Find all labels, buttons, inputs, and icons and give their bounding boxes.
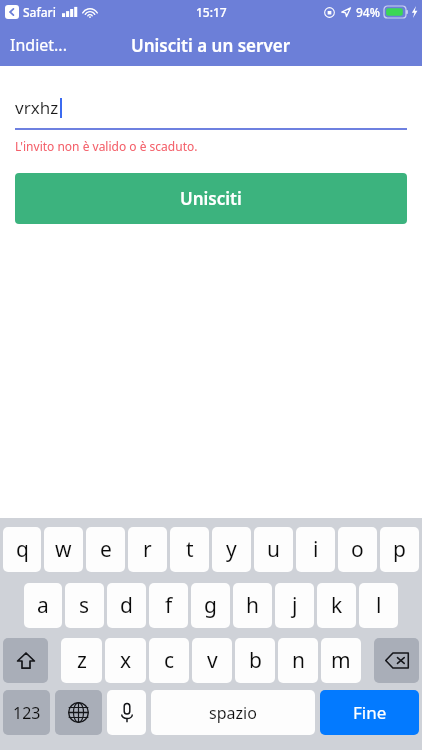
button[interactable]: f	[149, 583, 188, 628]
staticText: Unisciti	[180, 187, 242, 210]
button[interactable]: 123	[3, 690, 50, 735]
button[interactable]: Dictation	[107, 690, 146, 735]
button[interactable]: Fine	[320, 690, 419, 735]
staticText: z	[77, 646, 87, 675]
button[interactable]: h	[233, 583, 272, 628]
staticText: e	[100, 535, 112, 564]
button[interactable]: y	[212, 527, 251, 572]
staticText: vrxhz	[15, 96, 59, 119]
staticText: Unisciti a un server	[131, 34, 291, 57]
staticText: i	[313, 535, 319, 564]
button[interactable]: spazio	[151, 690, 315, 735]
staticText: w	[55, 535, 72, 564]
button[interactable]: Shift	[3, 638, 48, 683]
button[interactable]: z	[61, 638, 102, 683]
button[interactable]: vrxhz	[15, 96, 407, 130]
staticText: a	[37, 591, 49, 620]
staticText: j	[292, 591, 298, 620]
button[interactable]: i	[296, 527, 335, 572]
button[interactable]: r	[128, 527, 167, 572]
staticText: d	[120, 591, 133, 620]
button[interactable]: l	[359, 583, 398, 628]
staticText: v	[207, 646, 218, 675]
button[interactable]: k	[317, 583, 356, 628]
staticText: c	[164, 646, 175, 675]
button[interactable]: c	[149, 638, 189, 683]
staticText: y	[226, 535, 237, 564]
staticText: Fine	[353, 701, 387, 724]
button[interactable]: s	[65, 583, 104, 628]
button[interactable]: p	[380, 527, 419, 572]
button[interactable]: Indiet...	[0, 24, 77, 66]
button[interactable]: g	[191, 583, 230, 628]
button[interactable]: u	[254, 527, 293, 572]
button[interactable]: q	[3, 527, 41, 572]
staticText: m	[331, 646, 351, 675]
button[interactable]: n	[278, 638, 318, 683]
staticText: 94%	[356, 4, 380, 20]
staticText: q	[16, 535, 29, 564]
staticText: s	[79, 591, 90, 620]
button[interactable]: d	[107, 583, 146, 628]
button[interactable]: x	[105, 638, 146, 683]
staticText: r	[143, 535, 152, 564]
staticText: 123	[13, 702, 41, 724]
staticText: b	[249, 646, 262, 675]
staticText: h	[246, 591, 259, 620]
staticText: l	[376, 591, 382, 620]
staticText: f	[165, 591, 173, 620]
button[interactable]: Backspace	[374, 638, 419, 683]
button[interactable]: b	[235, 638, 275, 683]
staticText: L'invito non è valido o è scaduto.	[15, 138, 198, 154]
staticText: Indiet...	[10, 34, 67, 56]
staticText: x	[120, 646, 132, 675]
button[interactable]: m	[321, 638, 361, 683]
button[interactable]: a	[24, 583, 62, 628]
button[interactable]: o	[338, 527, 377, 572]
button[interactable]: e	[86, 527, 125, 572]
staticText: p	[393, 535, 406, 564]
button[interactable]: t	[170, 527, 209, 572]
staticText: n	[292, 646, 305, 675]
staticText: 15:17	[196, 4, 227, 20]
button[interactable]: j	[275, 583, 314, 628]
staticText: k	[331, 591, 343, 620]
staticText: u	[267, 535, 280, 564]
staticText: g	[204, 591, 217, 620]
button[interactable]: Unisciti	[15, 173, 407, 224]
staticText: o	[351, 535, 364, 564]
button[interactable]: v	[192, 638, 232, 683]
button[interactable]: Change keyboard	[55, 690, 102, 735]
staticText: Safari	[23, 4, 56, 20]
button[interactable]: w	[44, 527, 83, 572]
staticText: spazio	[209, 702, 257, 724]
staticText: t	[186, 535, 194, 564]
